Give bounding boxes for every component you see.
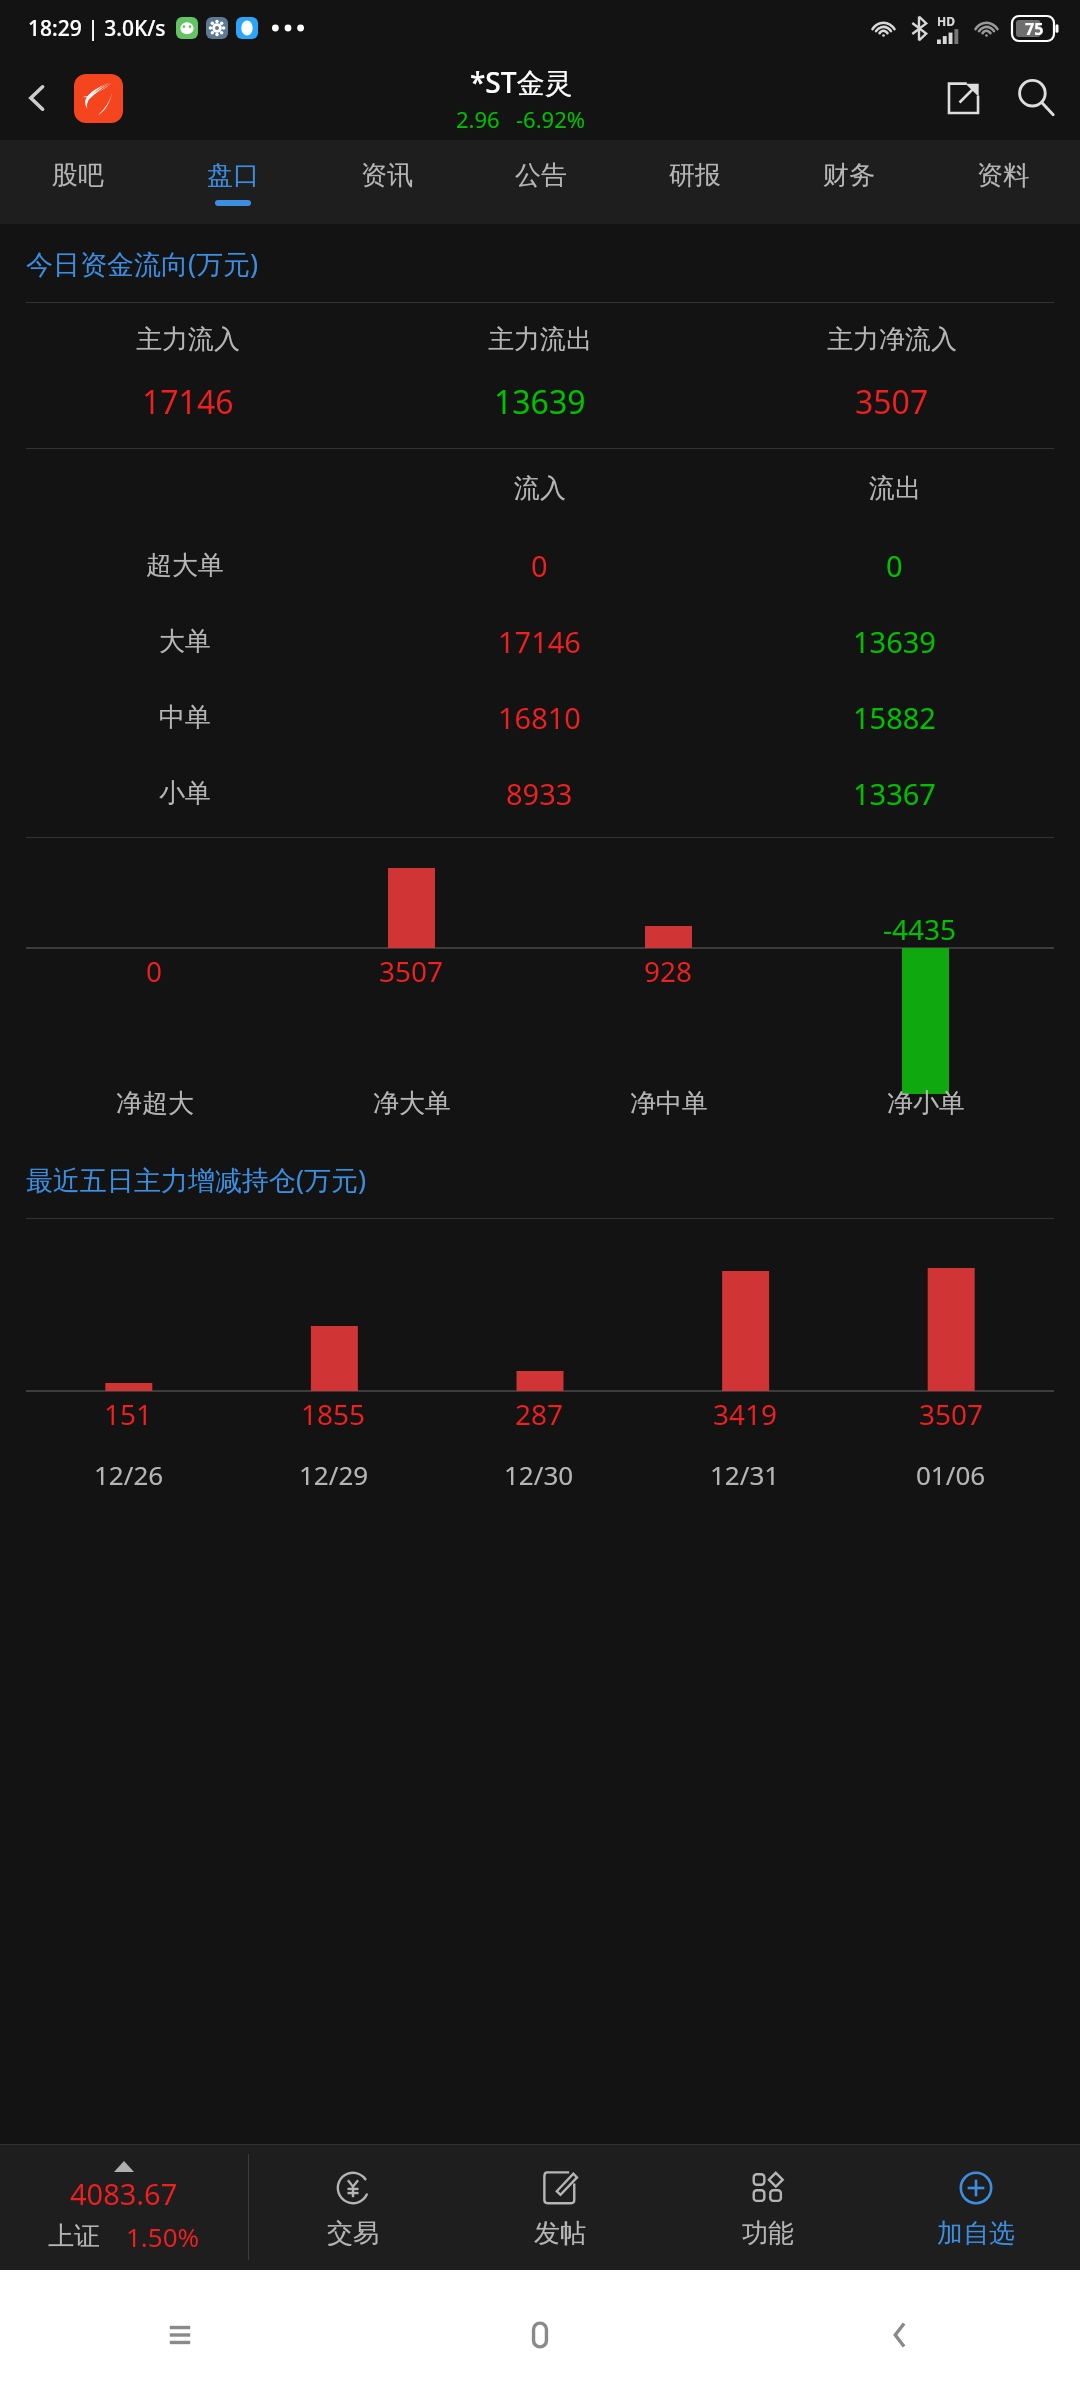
button[interactable]: Back [0, 56, 74, 140]
button[interactable]: 盘口 [155, 140, 310, 224]
staticText: 中单 [159, 701, 211, 734]
staticText: 8933 [506, 774, 573, 813]
staticText: 151 [104, 1395, 153, 1433]
button[interactable]: 研报 [618, 140, 772, 224]
staticText: 17146 [498, 622, 581, 661]
staticText: 发帖 [534, 2217, 586, 2250]
staticText: 小单 [159, 777, 211, 810]
staticText: 最近五日主力增减持仓(万元) [26, 1161, 367, 1198]
staticText: 12/31 [710, 1457, 780, 1492]
button[interactable]: 中单 [8, 679, 1072, 755]
staticText: 资讯 [361, 159, 413, 192]
staticText: 75 [1025, 18, 1044, 40]
staticText: 3507 [855, 380, 929, 424]
staticText: 净小单 [887, 1087, 965, 1120]
staticText: 净超大 [116, 1087, 194, 1120]
staticText: 12/29 [299, 1457, 369, 1492]
staticText: 净中单 [630, 1087, 708, 1120]
staticText: 今日资金流向(万元) [26, 245, 259, 282]
staticText: 3507 [919, 1395, 984, 1433]
staticText: 1855 [301, 1395, 366, 1433]
button[interactable]: 公告 [464, 140, 618, 224]
staticText: 资料 [977, 159, 1029, 192]
button[interactable]: Share [928, 63, 998, 133]
staticText: -4435 [883, 910, 957, 948]
staticText: 0 [531, 546, 548, 585]
button[interactable]: 4083.67 [0, 2144, 248, 2270]
staticText: 16810 [498, 698, 581, 737]
button[interactable]: 资料 [926, 140, 1080, 224]
staticText: 12/30 [504, 1457, 574, 1492]
button[interactable]: 财务 [772, 140, 926, 224]
staticText: 4083.67 [70, 2174, 178, 2213]
staticText: 加自选 [937, 2217, 1015, 2250]
button[interactable]: 加自选 [872, 2144, 1080, 2270]
staticText: 流入 [514, 472, 566, 505]
staticText: 净大单 [373, 1087, 451, 1120]
staticText: 18:29 | 3.0K/s [28, 14, 166, 43]
button[interactable]: Home [360, 2270, 720, 2400]
staticText: 盘口 [207, 159, 259, 192]
staticText: 研报 [669, 159, 721, 192]
button[interactable]: 资讯 [310, 140, 464, 224]
staticText: 主力流出 [488, 323, 592, 356]
staticText: 928 [644, 952, 693, 990]
staticText: 功能 [742, 2217, 794, 2250]
button[interactable]: 发帖 [456, 2144, 664, 2270]
staticText: 3419 [713, 1395, 778, 1433]
staticText: 2.96 [456, 104, 500, 134]
button[interactable]: Search [998, 60, 1074, 136]
button[interactable]: Recents [0, 2270, 360, 2400]
button[interactable]: 大单 [8, 603, 1072, 679]
staticText: 主力净流入 [827, 323, 957, 356]
button[interactable]: 交易 [249, 2144, 456, 2270]
staticText: *ST金灵 [470, 63, 573, 101]
staticText: 15882 [853, 698, 936, 737]
staticText: 大单 [159, 625, 211, 658]
staticText: 12/26 [94, 1457, 164, 1492]
staticText: 流出 [869, 472, 921, 505]
staticText: 3507 [379, 952, 444, 990]
button[interactable]: Back [720, 2270, 1080, 2400]
staticText: 13367 [853, 774, 936, 813]
staticText: 0 [886, 546, 903, 585]
staticText: 超大单 [146, 549, 224, 582]
staticText: 上证 [48, 2220, 100, 2253]
staticText: 13639 [853, 622, 936, 661]
staticText: -6.92% [516, 104, 586, 134]
button[interactable]: 小单 [8, 755, 1072, 831]
staticText: 0 [146, 952, 163, 990]
staticText: 1.50% [126, 2219, 200, 2254]
staticText: HD [937, 13, 955, 29]
staticText: 01/06 [916, 1457, 986, 1492]
staticText: 主力流入 [136, 323, 240, 356]
staticText: 287 [515, 1395, 564, 1433]
button[interactable]: 功能 [664, 2144, 872, 2270]
staticText: 股吧 [52, 159, 104, 192]
staticText: 17146 [142, 380, 234, 424]
button[interactable]: 股吧 [0, 140, 155, 224]
button[interactable]: 超大单 [8, 527, 1072, 603]
staticText: 公告 [515, 159, 567, 192]
staticText: 13639 [494, 380, 586, 424]
staticText: 财务 [823, 159, 875, 192]
button[interactable]: App logo [74, 74, 123, 123]
staticText: 交易 [327, 2217, 379, 2250]
